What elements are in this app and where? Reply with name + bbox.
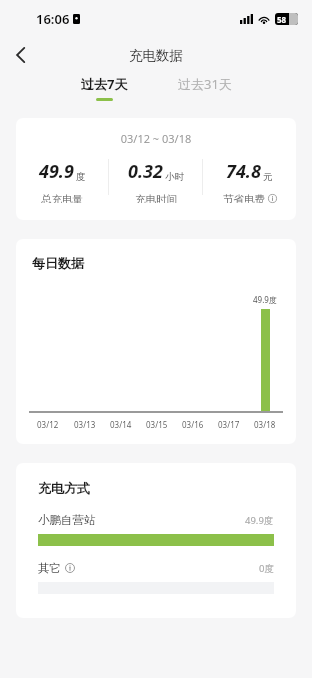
button[interactable]: 每日数据	[16, 239, 296, 444]
staticText: 03/14	[110, 419, 132, 430]
button[interactable]: 过去7天	[75, 72, 134, 104]
staticText: 每日数据	[32, 255, 84, 271]
staticText: 总充电量	[41, 193, 83, 203]
staticText: 03/16	[182, 419, 204, 430]
staticText: 03/12	[37, 419, 59, 430]
button[interactable]: 充电方式	[16, 463, 296, 618]
staticText: 0.32	[128, 159, 163, 184]
button[interactable]: Back	[0, 38, 40, 72]
staticText: 节省电费	[223, 193, 265, 203]
staticText: 03/17	[218, 419, 240, 430]
staticText: 49.9度	[253, 294, 277, 305]
staticText: 16:06	[36, 10, 70, 28]
staticText: 充电方式	[38, 480, 90, 496]
staticText: 过去7天	[81, 75, 128, 93]
button[interactable]: 03/12 ~ 03/18	[16, 118, 296, 220]
staticText: 58	[277, 14, 287, 25]
staticText: 03/18	[254, 419, 276, 430]
button[interactable]: 过去31天	[172, 72, 238, 104]
staticText: 0度	[259, 562, 274, 575]
staticText: 49.9	[39, 159, 74, 184]
staticText: 其它	[38, 561, 61, 575]
staticText: 小鹏自营站	[38, 513, 96, 527]
staticText: 03/15	[146, 419, 168, 430]
staticText: 充电时间	[135, 193, 177, 203]
staticText: 元	[263, 171, 273, 183]
staticText: 度	[76, 171, 86, 183]
staticText: 过去31天	[178, 75, 232, 93]
staticText: 74.8	[226, 159, 261, 184]
staticText: 小时	[165, 171, 184, 183]
staticText: 03/13	[74, 419, 96, 430]
staticText: 49.9度	[245, 514, 274, 527]
staticText: 03/12 ~ 03/18	[16, 131, 296, 146]
button[interactable]: More info	[65, 563, 75, 573]
staticText: 充电数据	[129, 47, 183, 64]
button[interactable]: More info	[268, 194, 277, 203]
